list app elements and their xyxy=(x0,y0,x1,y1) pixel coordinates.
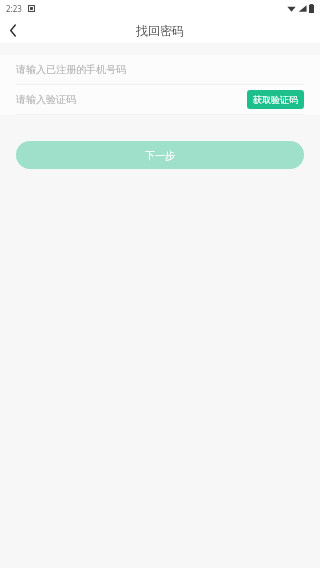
staticText: 2:23 xyxy=(6,3,22,14)
staticText: 请输入验证码 xyxy=(16,93,76,106)
button[interactable]: 请输入已注册的手机号码 xyxy=(0,55,320,84)
button[interactable]: 请输入验证码 xyxy=(16,85,247,114)
staticText: 下一步 xyxy=(145,149,175,162)
staticText: 找回密码 xyxy=(136,23,184,38)
staticText: 请输入已注册的手机号码 xyxy=(16,63,126,76)
button[interactable]: 获取验证码 xyxy=(247,90,304,109)
staticText: 获取验证码 xyxy=(253,94,298,105)
button[interactable]: Back xyxy=(0,17,26,43)
button[interactable]: 下一步 xyxy=(16,141,304,169)
